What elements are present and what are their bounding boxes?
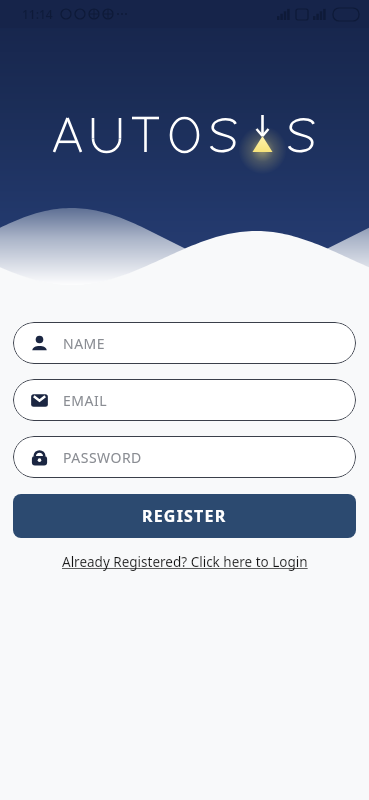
staticText: 11:14 <box>22 6 53 22</box>
staticText: REGISTER <box>142 505 227 527</box>
staticText: Already Registered? Click here to Login <box>62 553 308 571</box>
staticText: PASSWORD <box>63 448 142 467</box>
button[interactable]: Email <box>13 379 356 421</box>
staticText: EMAIL <box>63 391 108 410</box>
button[interactable]: Already Registered? Click here to Login <box>56 550 314 574</box>
button[interactable]: Name <box>13 322 356 364</box>
button[interactable]: REGISTER <box>13 494 356 538</box>
button[interactable]: Password <box>13 436 356 478</box>
staticText: NAME <box>63 334 106 353</box>
